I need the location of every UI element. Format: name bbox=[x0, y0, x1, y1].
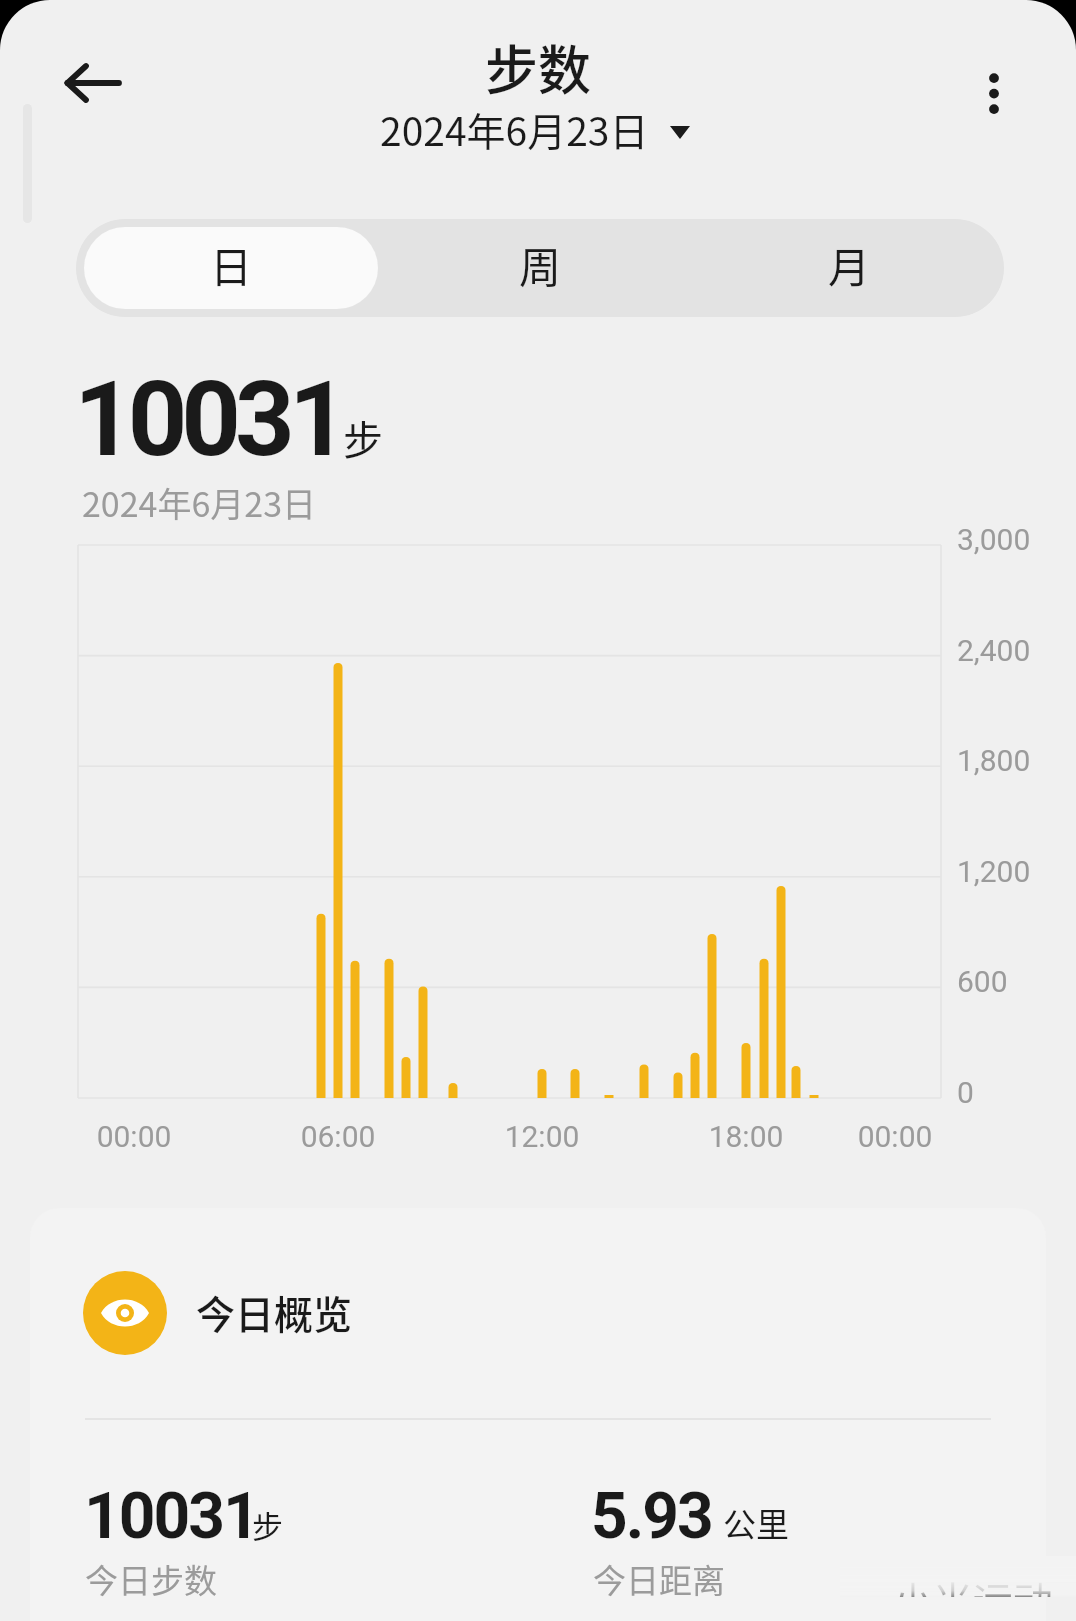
staticText: 2024年6月23日 bbox=[380, 101, 649, 157]
staticText: 1,800 bbox=[957, 743, 1031, 778]
staticText: 18:00 bbox=[676, 1119, 816, 1154]
staticText: 10031 bbox=[74, 359, 343, 481]
staticText: 00:00 bbox=[64, 1119, 204, 1154]
staticText: 2,400 bbox=[957, 633, 1031, 668]
button[interactable]: 月 bbox=[703, 227, 996, 309]
staticText: 步 bbox=[252, 1502, 283, 1547]
button[interactable]: Back bbox=[48, 50, 144, 116]
staticText: 1,200 bbox=[957, 854, 1031, 889]
staticText: 月 bbox=[828, 234, 871, 295]
staticText: 3,000 bbox=[957, 522, 1031, 557]
staticText: 5.93 bbox=[591, 1479, 712, 1554]
staticText: 今日步数 bbox=[85, 1555, 217, 1603]
staticText: 步 bbox=[343, 409, 383, 467]
staticText: 0 bbox=[957, 1075, 974, 1110]
staticText: 步数 bbox=[485, 29, 591, 106]
staticText: 00:00 bbox=[825, 1119, 965, 1154]
staticText: 公里 bbox=[723, 1499, 789, 1547]
button[interactable]: More options bbox=[954, 54, 1034, 134]
staticText: 10031 bbox=[84, 1479, 258, 1554]
staticText: 日 bbox=[210, 234, 253, 295]
staticText: 12:00 bbox=[472, 1119, 612, 1154]
button[interactable]: 周 bbox=[394, 227, 687, 309]
staticText: 今日概览 bbox=[196, 1284, 353, 1340]
staticText: 600 bbox=[957, 964, 1008, 999]
button[interactable]: 日 bbox=[84, 227, 378, 309]
staticText: 周 bbox=[519, 234, 562, 295]
staticText: 06:00 bbox=[268, 1119, 408, 1154]
staticText: — 小米运动健康 bbox=[848, 1570, 1076, 1597]
staticText: 今日距离 bbox=[593, 1555, 725, 1603]
button[interactable]: 2024年6月23日 bbox=[380, 101, 690, 157]
staticText: 2024年6月23日 bbox=[82, 478, 317, 527]
other: Today overview bbox=[83, 1271, 167, 1355]
button[interactable]: Today overview bbox=[30, 1253, 1046, 1373]
